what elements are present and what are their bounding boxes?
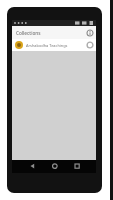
button[interactable]: Info — [83, 26, 96, 39]
button[interactable]: Expand — [84, 39, 96, 51]
staticText: Arshabodha Teachings — [26, 43, 84, 48]
staticText: Collections — [16, 30, 41, 36]
button[interactable]: Arshabodha Teachings — [12, 39, 96, 51]
